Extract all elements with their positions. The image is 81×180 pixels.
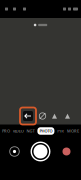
staticText: MORE <box>67 128 79 134</box>
button[interactable]: Take photo <box>29 140 51 162</box>
button[interactable]: NGT <box>27 128 35 134</box>
button[interactable]: PRO <box>2 128 10 134</box>
staticText: PRO <box>2 128 10 134</box>
staticText: PHOTO <box>39 128 52 134</box>
button[interactable]: Location tag <box>32 22 48 28</box>
button[interactable]: Switch lens <box>20 107 36 124</box>
button[interactable]: PTR <box>57 128 64 134</box>
staticText: VIDEO <box>13 128 24 134</box>
staticText: PTR <box>57 128 64 134</box>
button[interactable]: Timer <box>38 111 47 120</box>
button[interactable]: PHOTO <box>37 127 54 135</box>
button[interactable]: Settings <box>63 111 72 120</box>
button[interactable]: VIDEO <box>13 128 24 134</box>
staticText: NGT <box>27 128 35 134</box>
button[interactable]: Flash <box>50 111 59 120</box>
button[interactable]: Gallery <box>8 145 21 158</box>
button[interactable]: MORE <box>67 128 79 134</box>
button[interactable]: Switch camera <box>60 145 73 158</box>
